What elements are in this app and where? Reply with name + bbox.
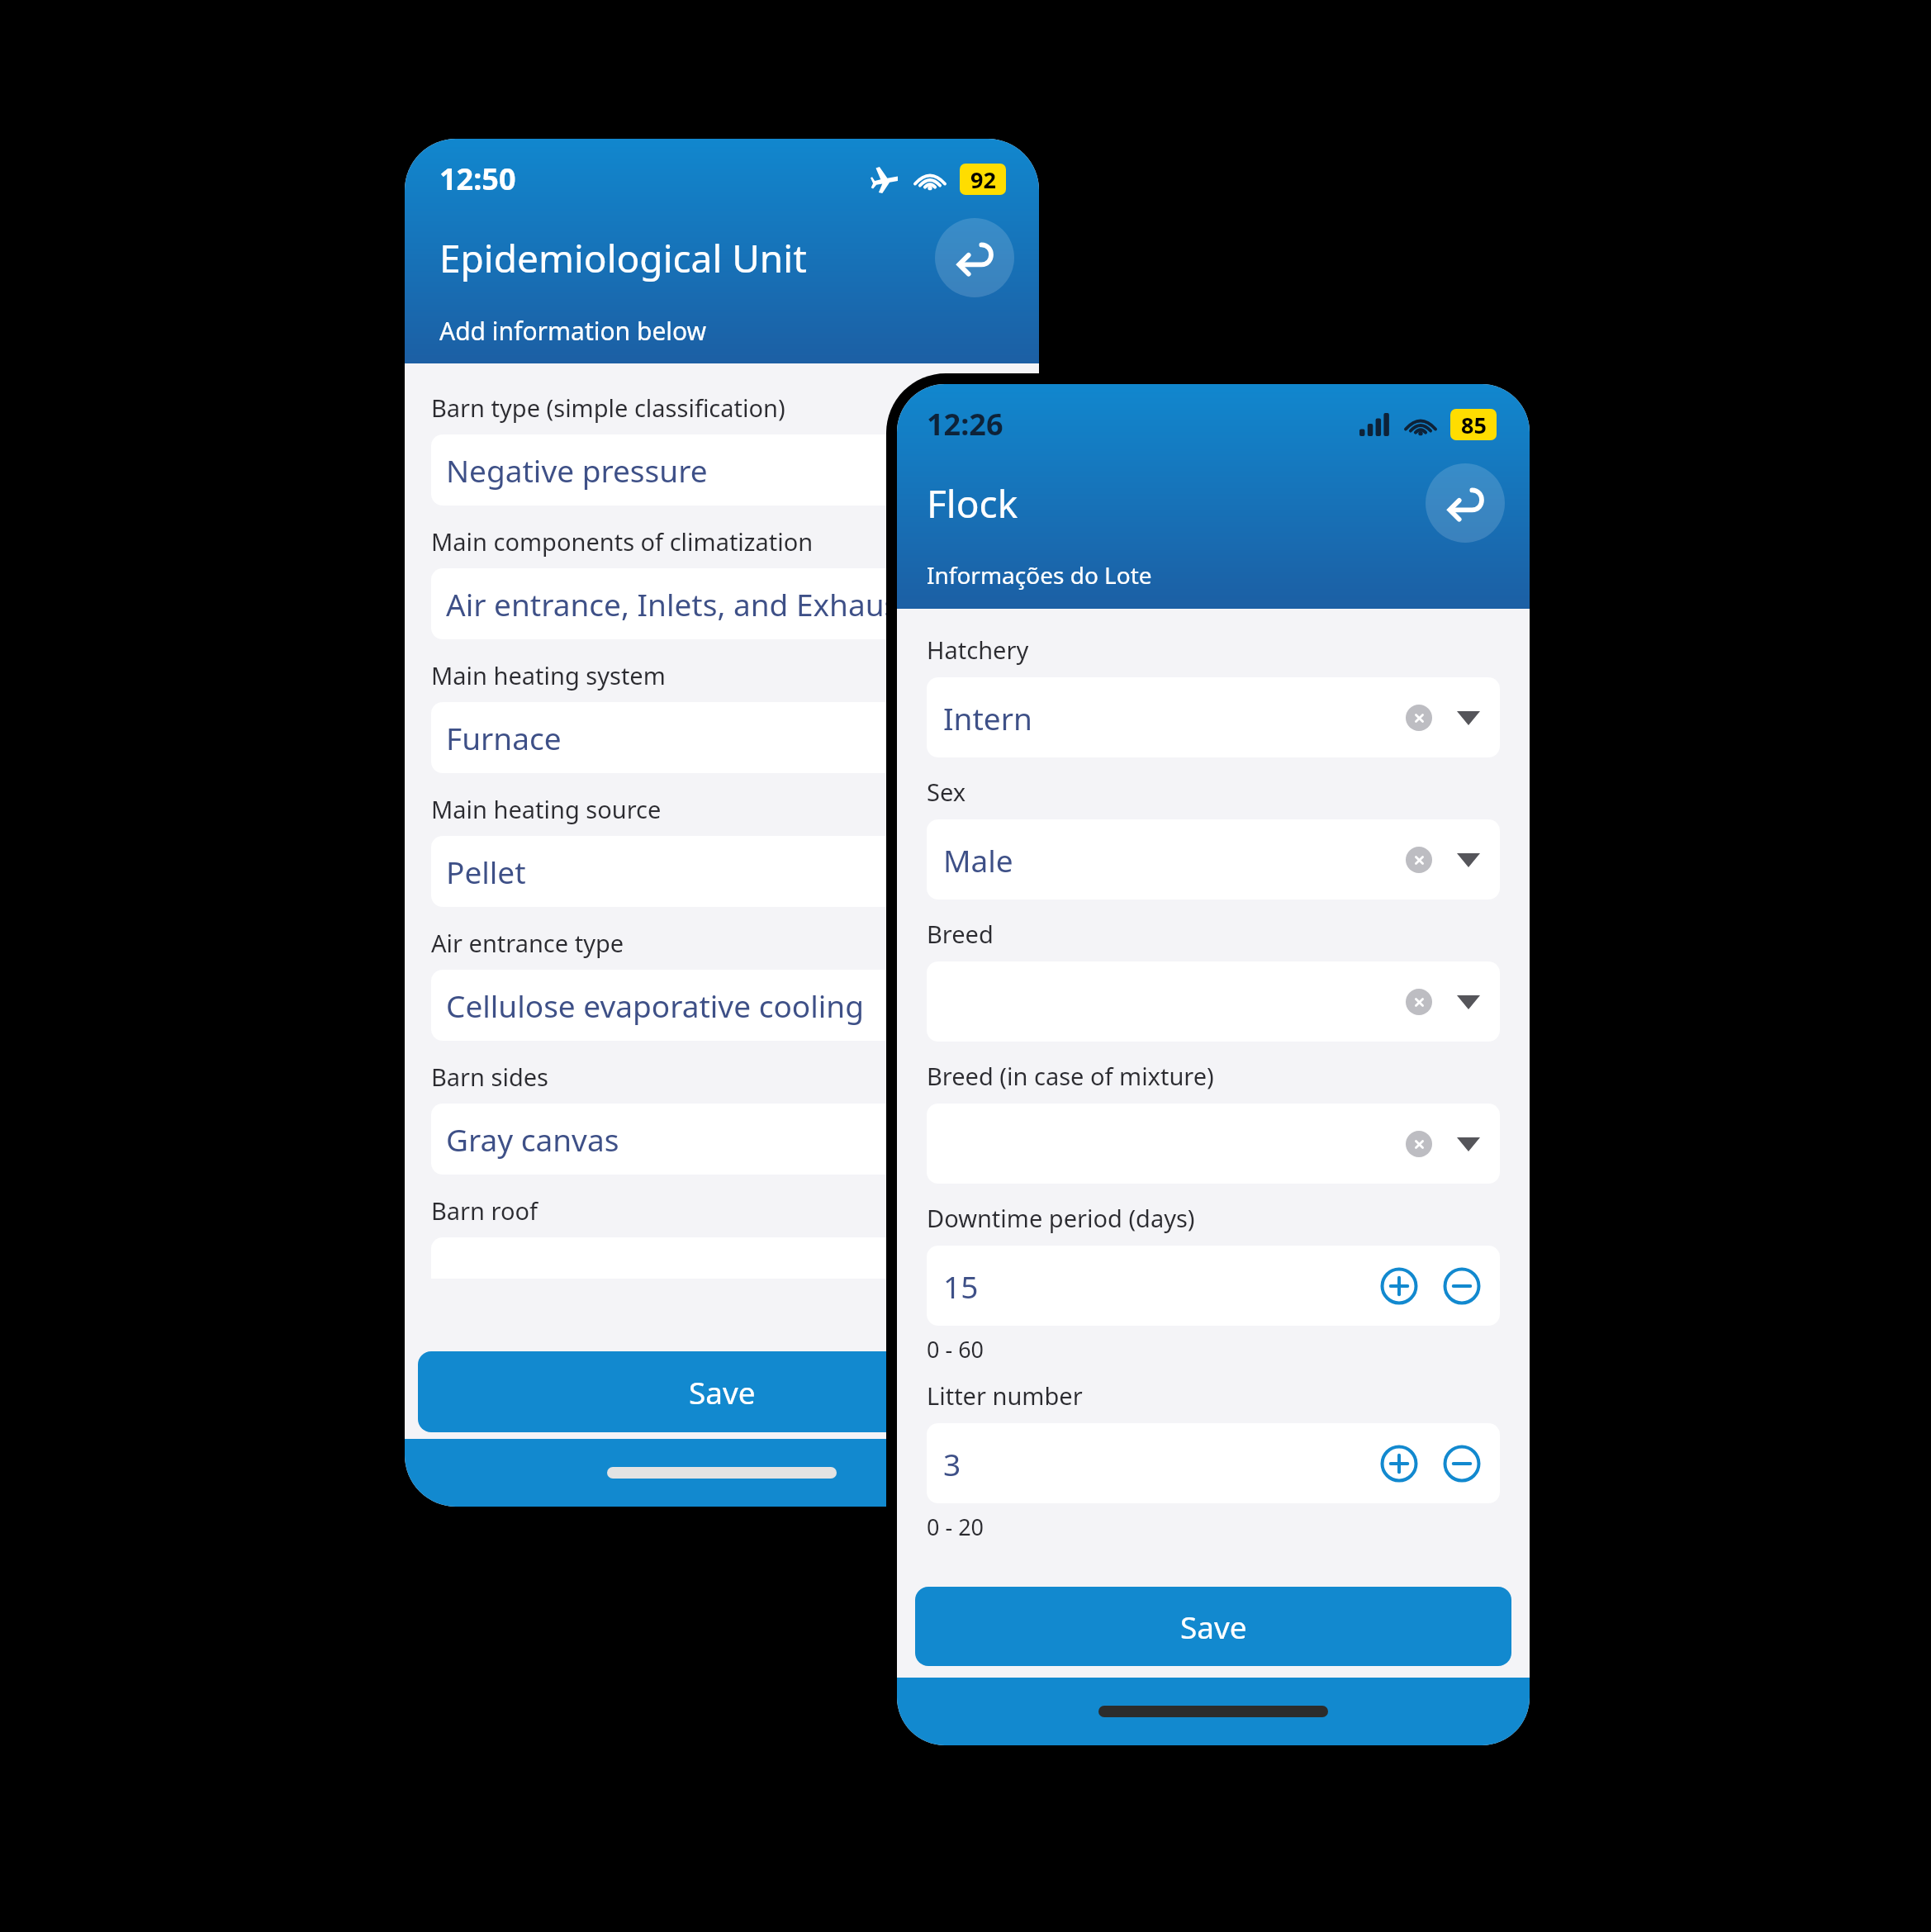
button[interactable]: Pellet (431, 836, 1013, 907)
staticText: 0 - 60 (927, 1334, 984, 1365)
staticText: Cellulose evaporative cooling (446, 985, 864, 1026)
button[interactable]: Back (935, 218, 1014, 297)
staticText: Male (943, 839, 1013, 881)
staticText: Epidemiological Unit (439, 232, 807, 284)
button[interactable]: Clear (1406, 1131, 1432, 1157)
staticText: 15 (943, 1265, 979, 1307)
staticText: Barn type (simple classification) (431, 392, 785, 424)
staticText: Pellet (446, 851, 526, 892)
staticText: 3 (943, 1443, 961, 1484)
button[interactable]: Negative pressure (431, 434, 1013, 506)
staticText: 0 - 20 (927, 1512, 984, 1542)
staticText: 12:50 (439, 159, 516, 199)
button[interactable]: Back (1426, 463, 1505, 543)
button[interactable]: Save (915, 1587, 1511, 1666)
staticText: 92 (970, 164, 996, 195)
staticText: 12:26 (927, 404, 1003, 444)
button[interactable]: Cellulose evaporative cooling (431, 970, 1013, 1041)
button[interactable]: Air entrance, Inlets, and Exhaus... (431, 568, 1013, 639)
button[interactable]: Decrease (1440, 1442, 1483, 1485)
button[interactable]: Clear (1406, 989, 1432, 1015)
button[interactable]: Clear (1406, 847, 1432, 873)
staticText: Sex (927, 776, 966, 808)
staticText: Add information below (439, 314, 707, 348)
button[interactable]: Male (927, 819, 1500, 900)
staticText: Gray canvas (446, 1118, 619, 1160)
staticText: Barn roof (431, 1194, 538, 1227)
staticText: Air entrance type (431, 927, 624, 959)
staticText: Negative pressure (446, 449, 708, 491)
staticText: Breed (in case of mixture) (927, 1060, 1214, 1092)
staticText: Breed (927, 918, 994, 950)
button[interactable]: Open dropdown (1454, 703, 1483, 733)
button[interactable]: Furnace (431, 702, 1013, 773)
button[interactable]: Clear (927, 961, 1500, 1042)
button[interactable]: Gray canvas (431, 1104, 1013, 1175)
staticText: Downtime period (days) (927, 1202, 1195, 1234)
staticText: Hatchery (927, 634, 1029, 666)
button[interactable]: Open dropdown (1454, 987, 1483, 1017)
staticText: Informações do Lote (927, 559, 1152, 591)
button[interactable]: Open dropdown (1454, 845, 1483, 875)
staticText: Save (689, 1371, 756, 1412)
button[interactable]: Open dropdown (1454, 1129, 1483, 1159)
staticText: Main heating system (431, 659, 666, 691)
button[interactable]: Decrease (1440, 1265, 1483, 1308)
button[interactable]: Save (418, 1351, 1026, 1432)
staticText: Furnace (446, 717, 562, 758)
staticText: Save (1180, 1606, 1247, 1647)
button[interactable]: Increase (1378, 1442, 1421, 1485)
button[interactable]: Increase (1378, 1265, 1421, 1308)
staticText: 85 (1461, 410, 1487, 440)
button[interactable]: Clear (927, 1104, 1500, 1184)
button[interactable]: Clear (1406, 705, 1432, 731)
staticText: Litter number (927, 1379, 1083, 1412)
staticText: Main heating source (431, 793, 662, 825)
staticText: Main components of climatization (431, 525, 814, 558)
staticText: Barn sides (431, 1061, 549, 1093)
staticText: Air entrance, Inlets, and Exhaus... (446, 583, 924, 624)
staticText: Intern (943, 697, 1032, 738)
staticText: Flock (927, 477, 1018, 529)
button[interactable]: Intern (927, 677, 1500, 757)
